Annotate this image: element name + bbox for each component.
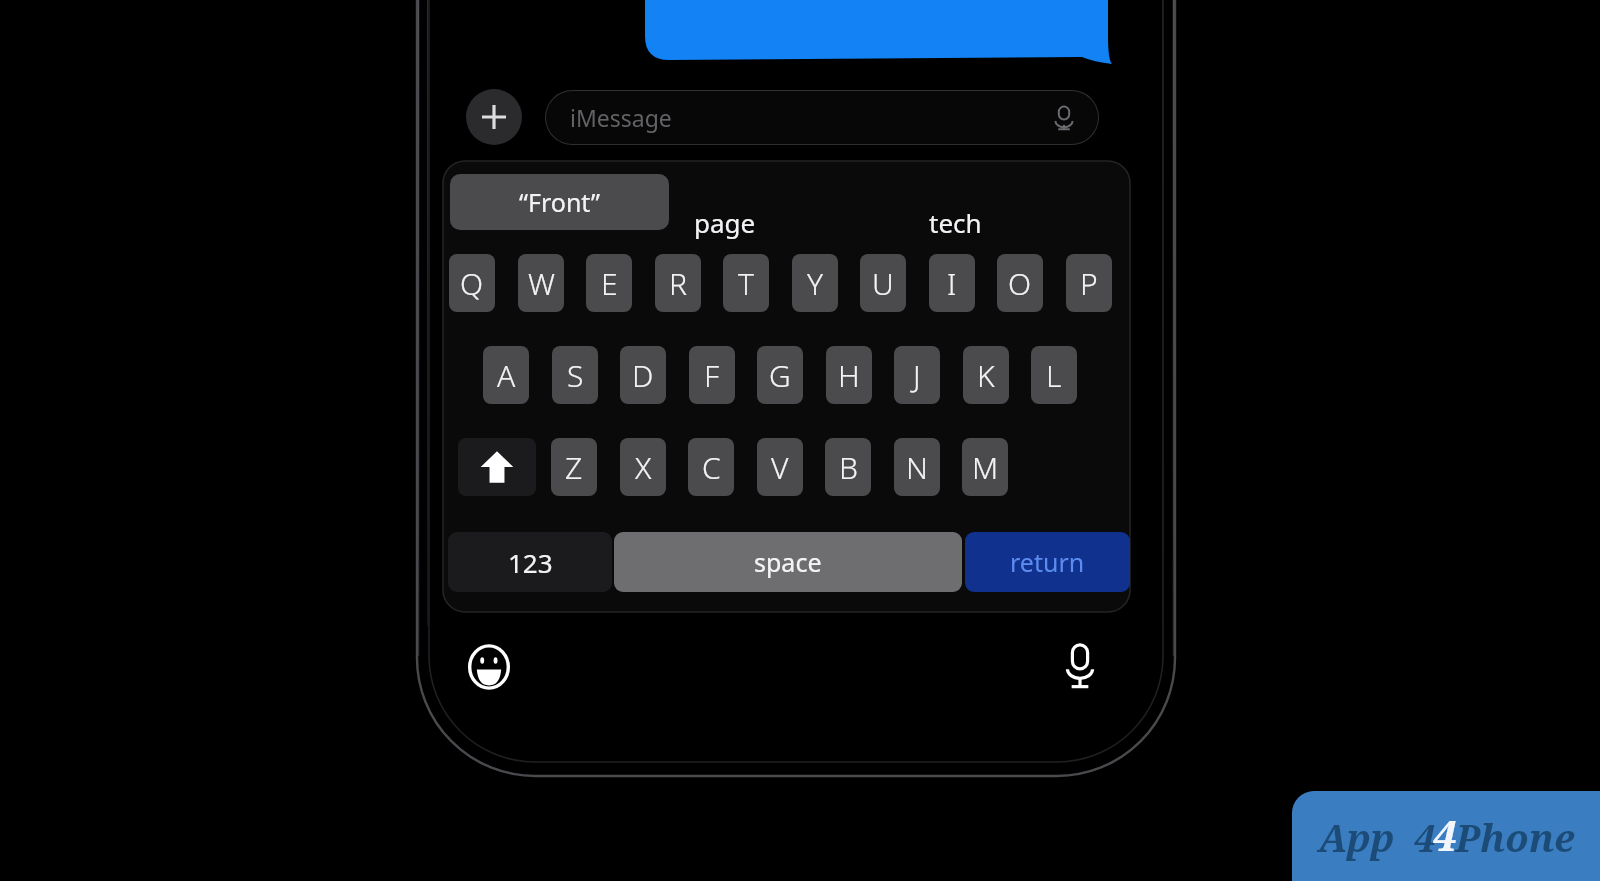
button[interactable]: H: [826, 346, 872, 404]
button[interactable]: N: [894, 438, 940, 496]
button[interactable]: O: [997, 254, 1043, 312]
button[interactable]: Y: [792, 254, 838, 312]
button[interactable]: G: [757, 346, 803, 404]
staticText: “Front”: [519, 185, 600, 219]
button[interactable]: A: [483, 346, 529, 404]
staticText: 123: [508, 545, 553, 580]
button[interactable]: Shift: [458, 438, 536, 496]
staticText: W: [528, 263, 555, 304]
staticText: L: [1046, 355, 1062, 396]
staticText: tech: [929, 205, 982, 240]
staticText: O: [1008, 263, 1032, 304]
staticText: H: [838, 355, 860, 396]
button[interactable]: D: [620, 346, 666, 404]
staticText: page: [694, 205, 756, 240]
staticText: X: [635, 447, 652, 488]
button[interactable]: T: [723, 254, 769, 312]
button[interactable]: K: [963, 346, 1009, 404]
button[interactable]: Add attachment: [466, 89, 522, 145]
button[interactable]: I: [929, 254, 975, 312]
staticText: Y: [807, 263, 824, 304]
button[interactable]: page: [645, 197, 805, 247]
button[interactable]: R: [655, 254, 701, 312]
button[interactable]: E: [586, 254, 632, 312]
button[interactable]: M: [962, 438, 1008, 496]
staticText: T: [738, 263, 754, 304]
button[interactable]: 123: [448, 532, 612, 592]
button[interactable]: Dictation: [1052, 638, 1108, 694]
button[interactable]: F: [689, 346, 735, 404]
button[interactable]: Dictate message: [1047, 101, 1081, 135]
staticText: Z: [565, 447, 583, 488]
staticText: G: [769, 355, 791, 396]
button[interactable]: P: [1066, 254, 1112, 312]
staticText: P: [1080, 263, 1098, 304]
staticText: S: [567, 355, 584, 396]
staticText: V: [771, 447, 789, 488]
staticText: J: [913, 355, 921, 396]
staticText: return: [1010, 545, 1085, 579]
staticText: space: [754, 545, 822, 579]
staticText: Q: [460, 263, 484, 304]
button[interactable]: S: [552, 346, 598, 404]
staticText: R: [669, 263, 687, 304]
staticText: C: [702, 447, 721, 488]
staticText: F: [704, 355, 720, 396]
button[interactable]: W: [518, 254, 564, 312]
staticText: K: [977, 355, 995, 396]
staticText: B: [839, 447, 858, 488]
button[interactable]: Emoji keyboard: [462, 640, 516, 694]
button[interactable]: C: [688, 438, 734, 496]
button[interactable]: V: [757, 438, 803, 496]
staticText: I: [947, 263, 957, 304]
button[interactable]: tech: [875, 197, 1035, 247]
button[interactable]: B: [825, 438, 871, 496]
button[interactable]: L: [1031, 346, 1077, 404]
staticText: U: [872, 263, 894, 304]
button[interactable]: Z: [551, 438, 597, 496]
staticText: M: [972, 447, 999, 488]
button[interactable]: return: [965, 532, 1130, 592]
staticText: 4: [1433, 806, 1457, 863]
button[interactable]: Q: [449, 254, 495, 312]
staticText: App 4 Phone: [1318, 811, 1575, 863]
staticText: E: [601, 263, 618, 304]
button[interactable]: U: [860, 254, 906, 312]
staticText: N: [906, 447, 928, 488]
button[interactable]: iMessage: [545, 90, 1099, 145]
button[interactable]: J: [894, 346, 940, 404]
button[interactable]: X: [620, 438, 666, 496]
staticText: iMessage: [570, 102, 672, 133]
staticText: D: [632, 355, 654, 396]
staticText: A: [497, 355, 516, 396]
button[interactable]: space: [614, 532, 962, 592]
button[interactable]: “Front”: [450, 174, 669, 230]
